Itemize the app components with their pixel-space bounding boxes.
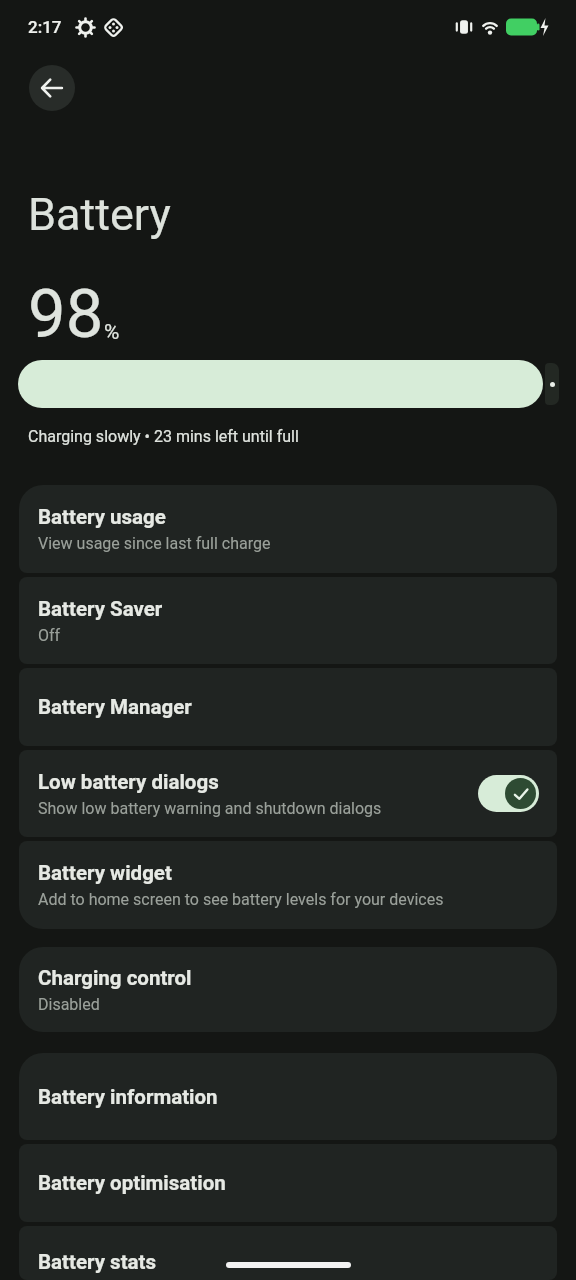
staticText: 98 xyxy=(28,275,104,354)
button[interactable]: Battery usage xyxy=(19,485,557,573)
staticText: Battery usage xyxy=(38,505,166,529)
button[interactable]: Battery information xyxy=(19,1053,557,1140)
staticText: Battery stats xyxy=(38,1250,157,1274)
staticText: % xyxy=(104,320,120,345)
button[interactable]: Battery Manager xyxy=(19,668,557,746)
staticText: Off xyxy=(38,626,61,645)
button[interactable]: Battery Saver xyxy=(19,577,557,664)
staticText: Battery xyxy=(28,188,171,241)
staticText: Charging slowly • 23 mins left until ful… xyxy=(28,427,299,446)
staticText: Disabled xyxy=(38,995,100,1014)
staticText: Charging control xyxy=(38,966,192,990)
button[interactable] xyxy=(478,775,539,812)
staticText: Battery optimisation xyxy=(38,1171,226,1195)
button[interactable]: Charging control xyxy=(19,947,557,1032)
button[interactable]: Battery widget xyxy=(19,841,557,929)
staticText: Show low battery warning and shutdown di… xyxy=(38,799,382,818)
staticText: 2:17 xyxy=(28,17,62,37)
button[interactable]: Battery stats xyxy=(19,1226,557,1280)
button[interactable]: Low battery dialogs xyxy=(19,750,557,837)
staticText: Low battery dialogs xyxy=(38,770,219,794)
staticText: Battery Manager xyxy=(38,695,192,719)
staticText: Battery widget xyxy=(38,861,172,885)
button[interactable]: Battery optimisation xyxy=(19,1144,557,1222)
staticText: Add to home screen to see battery levels… xyxy=(38,890,444,909)
button[interactable] xyxy=(29,65,75,111)
staticText: Battery Saver xyxy=(38,597,163,621)
staticText: View usage since last full charge xyxy=(38,534,271,553)
staticText: Battery information xyxy=(38,1085,218,1109)
